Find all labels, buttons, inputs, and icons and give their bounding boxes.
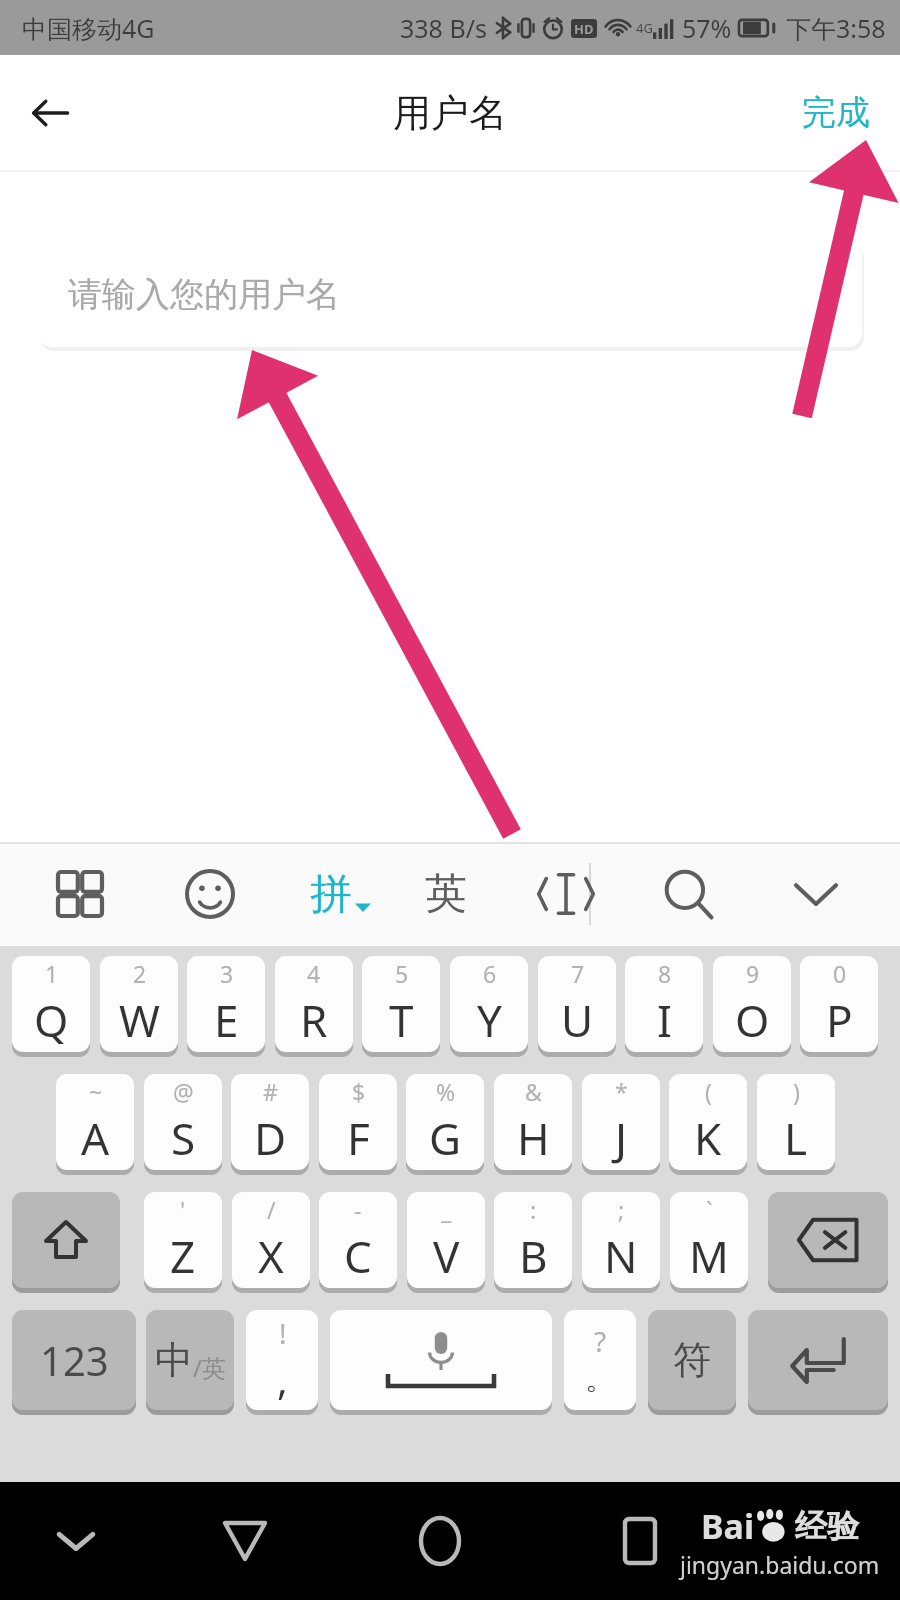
- staticText: Y: [477, 990, 502, 1050]
- button[interactable]: Recents: [600, 1501, 680, 1581]
- button[interactable]: #: [231, 1074, 309, 1170]
- staticText: P: [826, 990, 853, 1050]
- button[interactable]: [168, 842, 252, 946]
- staticText: 1: [45, 958, 59, 989]
- staticText: ?: [594, 1322, 607, 1360]
- staticText: O: [735, 990, 770, 1050]
- staticText: D: [254, 1108, 287, 1168]
- button[interactable]: /: [232, 1192, 310, 1288]
- button[interactable]: Backspace: [768, 1192, 888, 1288]
- button[interactable]: *: [582, 1074, 660, 1170]
- staticText: K: [694, 1108, 722, 1168]
- staticText: L: [784, 1108, 808, 1168]
- button[interactable]: 0: [800, 956, 878, 1052]
- button[interactable]: [38, 842, 122, 946]
- button[interactable]: Shift: [12, 1192, 120, 1288]
- button[interactable]: Home: [400, 1501, 480, 1581]
- staticText: E: [214, 990, 239, 1050]
- button[interactable]: Language: [146, 1310, 234, 1410]
- staticText: 拼: [310, 868, 352, 921]
- staticText: @: [173, 1076, 194, 1107]
- button[interactable]: 5: [362, 956, 440, 1052]
- staticText: ): [793, 1076, 800, 1107]
- staticText: 中: [155, 1336, 193, 1384]
- staticText: 338 B/s: [400, 11, 487, 45]
- button[interactable]: $: [319, 1074, 397, 1170]
- staticText: :: [530, 1194, 537, 1225]
- button[interactable]: [646, 842, 730, 946]
- staticText: M: [689, 1226, 729, 1286]
- staticText: T: [389, 990, 414, 1050]
- staticText: Z: [170, 1226, 196, 1286]
- staticText: 英: [425, 868, 467, 921]
- staticText: ;: [618, 1194, 625, 1225]
- button[interactable]: Comma: [246, 1310, 318, 1410]
- staticText: S: [171, 1108, 196, 1168]
- staticText: R: [300, 990, 328, 1050]
- staticText: 。: [585, 1360, 615, 1398]
- staticText: %: [436, 1076, 456, 1107]
- button[interactable]: :: [494, 1192, 572, 1288]
- staticText: Q: [34, 990, 69, 1050]
- button[interactable]: Space: [330, 1310, 552, 1410]
- staticText: W: [119, 990, 160, 1050]
- staticText: 8: [658, 958, 672, 989]
- button[interactable]: ~: [56, 1074, 134, 1170]
- button[interactable]: _: [407, 1192, 485, 1288]
- staticText: `: [706, 1194, 713, 1225]
- button[interactable]: (: [669, 1074, 747, 1170]
- staticText: -: [354, 1194, 362, 1225]
- staticText: $: [352, 1076, 366, 1107]
- button[interactable]: Period: [564, 1310, 636, 1410]
- staticText: H: [517, 1108, 550, 1168]
- button[interactable]: 请输入您的用户名: [38, 241, 862, 347]
- button[interactable]: 6: [450, 956, 528, 1052]
- button[interactable]: %: [406, 1074, 484, 1170]
- button[interactable]: 英: [408, 842, 484, 946]
- staticText: 7: [571, 958, 585, 989]
- staticText: 2: [133, 958, 147, 989]
- staticText: 请输入您的用户名: [68, 273, 340, 316]
- staticText: 6: [483, 958, 497, 989]
- staticText: ~: [89, 1076, 103, 1107]
- staticText: &: [525, 1076, 542, 1107]
- button[interactable]: 9: [713, 956, 791, 1052]
- staticText: ,: [277, 1352, 288, 1406]
- button[interactable]: 7: [538, 956, 616, 1052]
- button[interactable]: 完成: [790, 81, 882, 144]
- button[interactable]: ;: [582, 1192, 660, 1288]
- staticText: 下午3:58: [786, 11, 886, 45]
- staticText: Bai: [701, 1503, 755, 1549]
- button[interactable]: Hide keyboard: [36, 1501, 116, 1581]
- button[interactable]: Back: [205, 1501, 285, 1581]
- button[interactable]: 8: [625, 956, 703, 1052]
- button[interactable]: 3: [187, 956, 265, 1052]
- staticText: (: [705, 1076, 712, 1107]
- button[interactable]: `: [670, 1192, 748, 1288]
- button[interactable]: 拼: [292, 842, 388, 946]
- staticText: *: [615, 1076, 628, 1107]
- button[interactable]: [774, 842, 858, 946]
- button[interactable]: [524, 842, 608, 946]
- staticText: V: [433, 1226, 460, 1286]
- button[interactable]: 1: [12, 956, 90, 1052]
- staticText: _: [441, 1194, 452, 1225]
- staticText: J: [615, 1108, 628, 1168]
- button[interactable]: 4: [275, 956, 353, 1052]
- button[interactable]: &: [494, 1074, 572, 1170]
- staticText: 9: [746, 958, 760, 989]
- button[interactable]: Numbers: [12, 1310, 136, 1410]
- button[interactable]: Enter: [748, 1310, 888, 1410]
- staticText: X: [258, 1226, 284, 1286]
- button[interactable]: Symbols: [648, 1310, 736, 1410]
- staticText: 5: [395, 958, 409, 989]
- button[interactable]: 2: [100, 956, 178, 1052]
- button[interactable]: Back: [10, 73, 90, 153]
- button[interactable]: @: [144, 1074, 222, 1170]
- button[interactable]: ': [144, 1192, 222, 1288]
- staticText: 57%: [682, 11, 732, 45]
- staticText: !: [279, 1314, 287, 1352]
- button[interactable]: -: [319, 1192, 397, 1288]
- staticText: 经验: [795, 1506, 859, 1546]
- button[interactable]: ): [757, 1074, 835, 1170]
